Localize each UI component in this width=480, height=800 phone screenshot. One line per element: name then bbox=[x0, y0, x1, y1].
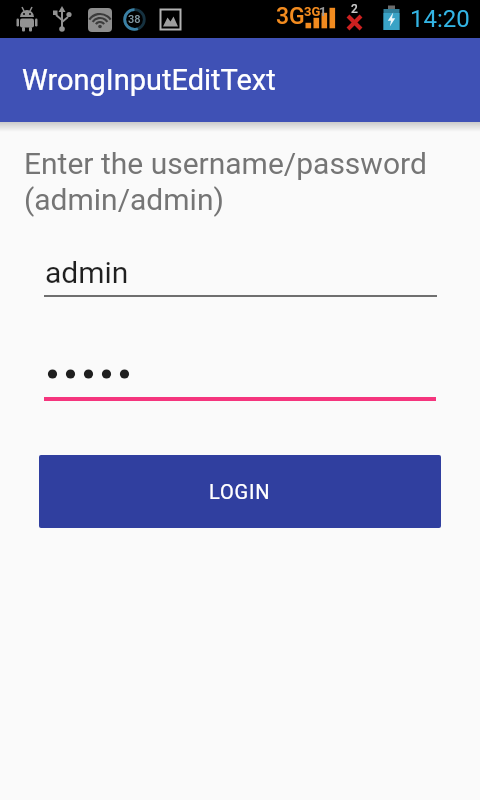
staticText: admin bbox=[45, 255, 129, 290]
staticText: 14:20 bbox=[410, 5, 470, 33]
staticText: 1 bbox=[319, 4, 327, 19]
staticText: 3G bbox=[276, 3, 305, 30]
staticText: 38 bbox=[128, 13, 141, 26]
button[interactable]: LOGIN bbox=[39, 455, 441, 528]
staticText: LOGIN bbox=[209, 480, 271, 503]
staticText: WrongInputEditText bbox=[22, 63, 276, 97]
staticText: 3G bbox=[304, 4, 321, 19]
staticText: 2 bbox=[351, 2, 358, 16]
staticText: Enter the username/password (admin/admin… bbox=[24, 146, 427, 217]
button[interactable]: admin bbox=[40, 243, 437, 299]
button[interactable] bbox=[40, 345, 437, 403]
